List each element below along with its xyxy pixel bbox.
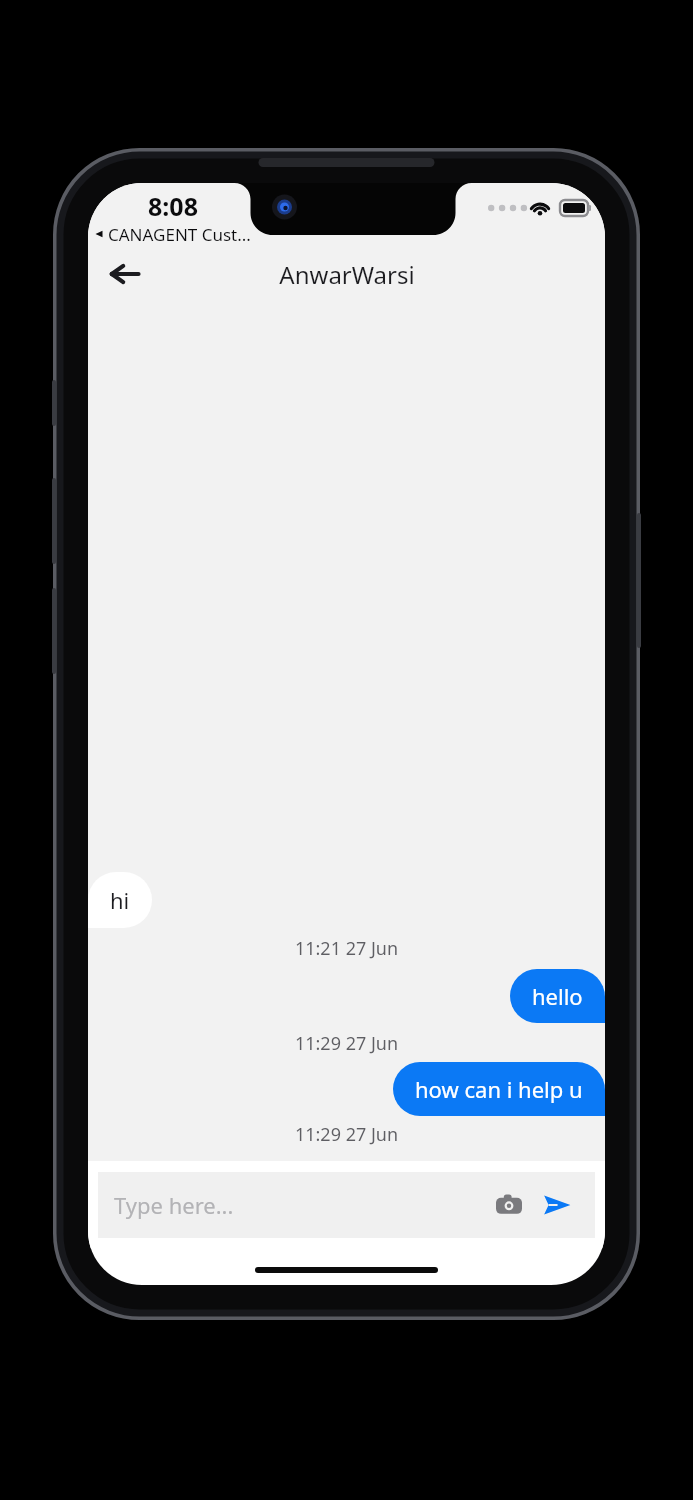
button[interactable]: Type here... <box>98 1172 595 1238</box>
button[interactable]: Send <box>535 1183 579 1227</box>
staticText: how can i help u <box>415 1074 583 1104</box>
staticText: 11:21 27 Jun <box>88 936 605 961</box>
staticText: 8:08 <box>148 189 198 223</box>
staticText: hello <box>532 981 583 1011</box>
staticText: hi <box>110 885 130 915</box>
staticText: AnwarWarsi <box>279 258 415 291</box>
button[interactable]: hello <box>510 969 605 1023</box>
staticText: CANAGENT Cust... <box>108 223 251 245</box>
staticText: 11:29 27 Jun <box>88 1122 605 1147</box>
button[interactable]: how can i help u <box>393 1062 605 1116</box>
button[interactable]: Camera <box>487 1183 531 1227</box>
staticText: 11:29 27 Jun <box>88 1031 605 1056</box>
button[interactable]: hi <box>88 872 152 928</box>
button[interactable]: Back <box>98 247 152 301</box>
staticText: Type here... <box>114 1190 487 1220</box>
